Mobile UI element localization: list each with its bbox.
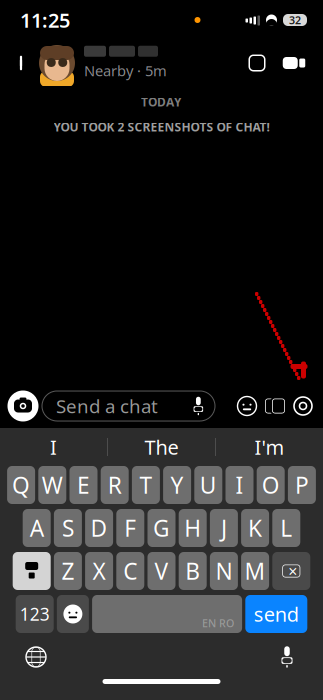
button[interactable]: T <box>132 466 160 504</box>
button[interactable]: B <box>179 552 207 590</box>
staticText: TODAY <box>141 94 182 110</box>
button[interactable]: U <box>194 466 222 504</box>
button[interactable]: A <box>23 509 51 547</box>
button[interactable]: Y <box>163 466 191 504</box>
button[interactable]: Camera <box>4 386 42 426</box>
button[interactable]: F <box>116 509 144 547</box>
staticText: I <box>50 434 57 460</box>
button[interactable]: Change keyboard <box>14 640 58 674</box>
staticText: 32 <box>289 13 301 27</box>
staticText: P <box>295 470 309 500</box>
button[interactable]: J <box>210 509 238 547</box>
staticText: I <box>235 470 243 500</box>
staticText: R <box>108 470 122 500</box>
button[interactable]: V <box>147 552 175 590</box>
staticText: send <box>254 601 299 627</box>
button[interactable]: Location <box>289 386 317 426</box>
button[interactable]: I <box>0 428 107 466</box>
staticText: D <box>91 513 108 543</box>
button[interactable]: P <box>288 466 316 504</box>
staticText: J <box>221 513 227 543</box>
staticText: V <box>154 556 168 586</box>
button[interactable]: I'm <box>216 428 323 466</box>
button[interactable]: Back <box>4 41 38 85</box>
button[interactable]: O <box>257 466 285 504</box>
button[interactable]: Emoji <box>233 386 261 426</box>
button[interactable]: W <box>38 466 66 504</box>
staticText: 123 <box>20 602 50 625</box>
staticText: A <box>30 513 44 543</box>
button[interactable]: S <box>54 509 82 547</box>
button[interactable]: R <box>101 466 129 504</box>
staticText: × <box>288 560 297 582</box>
staticText: 11:25 <box>20 7 70 33</box>
button[interactable]: 123 <box>16 595 54 633</box>
staticText: Q <box>12 470 30 500</box>
staticText: I'm <box>254 434 284 460</box>
button[interactable]: Delete <box>272 552 310 590</box>
button[interactable]: K <box>241 509 269 547</box>
staticText: YOU TOOK 2 SCREENSHOTS OF CHAT! <box>53 119 269 135</box>
staticText: S <box>62 513 74 543</box>
button[interactable]: Audio call <box>239 41 275 85</box>
button[interactable]: Shift <box>13 552 51 590</box>
button[interactable]: Nearby · 5m <box>38 41 167 85</box>
staticText: F <box>124 513 136 543</box>
button[interactable]: Stickers <box>261 386 289 426</box>
button[interactable]: EN RO <box>92 595 242 633</box>
staticText: Send a chat <box>56 394 158 418</box>
staticText: X <box>93 556 106 586</box>
staticText: The <box>144 434 178 460</box>
button[interactable]: Q <box>7 466 35 504</box>
staticText: U <box>200 470 217 500</box>
button[interactable]: Send a chat <box>42 391 215 421</box>
button[interactable]: Video call <box>275 41 313 85</box>
button[interactable]: D <box>85 509 113 547</box>
button[interactable]: Emoji <box>57 595 89 633</box>
button[interactable]: G <box>147 509 175 547</box>
button[interactable]: Dictate <box>265 640 309 674</box>
staticText: H <box>184 513 201 543</box>
staticText: G <box>153 513 170 543</box>
button[interactable]: X <box>85 552 113 590</box>
staticText: M <box>245 556 266 586</box>
staticText: C <box>123 556 137 586</box>
staticText: B <box>185 556 200 586</box>
staticText: EN RO <box>202 616 234 630</box>
staticText: N <box>215 556 232 586</box>
button[interactable]: L <box>272 509 300 547</box>
button[interactable]: H <box>179 509 207 547</box>
staticText: L <box>280 513 292 543</box>
button[interactable]: E <box>69 466 97 504</box>
staticText: Nearby · 5m <box>84 61 167 80</box>
button[interactable]: send <box>245 595 307 633</box>
staticText: E <box>77 470 90 500</box>
staticText: Z <box>61 556 74 586</box>
button[interactable]: The <box>108 428 215 466</box>
staticText: Y <box>171 470 184 500</box>
button[interactable]: M <box>241 552 269 590</box>
staticText: K <box>248 513 262 543</box>
button[interactable]: Z <box>54 552 82 590</box>
button[interactable]: C <box>116 552 144 590</box>
staticText: W <box>42 470 63 500</box>
button[interactable]: I <box>225 466 253 504</box>
staticText: O <box>262 470 280 500</box>
button[interactable]: N <box>210 552 238 590</box>
staticText: T <box>139 470 152 500</box>
